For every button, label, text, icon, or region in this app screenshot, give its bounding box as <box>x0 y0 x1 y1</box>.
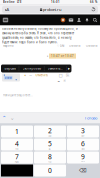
staticText: 🗎 <box>63 79 65 83</box>
button[interactable]: More <box>66 64 71 72</box>
staticText: ГHИ <box>15 148 18 150</box>
staticText: ☁ <box>57 80 60 83</box>
staticText: Like <box>60 44 65 47</box>
staticText: ⌫ <box>79 167 87 174</box>
staticText: TUV <box>48 161 51 163</box>
staticText: ⎘ <box>66 73 69 77</box>
button[interactable]: Account <box>75 14 83 25</box>
staticText: JKL <box>49 148 51 150</box>
staticText: Марина <box>3 44 13 47</box>
button[interactable]: Search <box>91 14 99 25</box>
button[interactable]: 0 <box>34 164 66 176</box>
staticText: PQRS <box>15 161 19 163</box>
staticText: 5 <box>48 139 52 148</box>
staticText: prokoni.ru <box>43 7 61 12</box>
staticText: ответ <box>5 76 12 79</box>
staticText: 6 <box>81 139 85 148</box>
staticText: ᴀA <box>4 7 9 12</box>
button[interactable]: Previous field <box>0 113 8 122</box>
staticText: MNO <box>81 148 84 150</box>
staticText: — <box>29 73 32 77</box>
staticText: 13:47 от 13:47 <box>51 54 74 58</box>
staticText: 2 <box>48 126 52 135</box>
staticText: ✦ <box>24 74 26 77</box>
button[interactable]: Menu <box>0 14 11 25</box>
staticText: ♡ <box>57 44 59 47</box>
button[interactable]: Notifications <box>83 14 91 25</box>
button[interactable]: Delete <box>67 164 99 176</box>
staticText: будет таким: надо было и было нужно. <box>2 40 58 44</box>
button[interactable]: Вырезать <box>1 64 19 72</box>
staticText: “ Ответить <box>84 44 97 47</box>
staticText: 8 <box>48 152 52 161</box>
staticText: ▶ <box>68 67 70 70</box>
staticText: □ <box>59 73 63 77</box>
staticText: 16:01 <box>51 0 60 4</box>
staticText: 4 <box>15 139 19 148</box>
button[interactable]: 9 <box>67 151 99 163</box>
button[interactable]: Next field <box>8 113 16 122</box>
button[interactable]: 7 <box>1 151 33 163</box>
button[interactable]: Скопировать <box>19 64 44 72</box>
staticText: Beeline LTE <box>3 0 21 4</box>
staticText: ABC <box>48 135 51 137</box>
button[interactable]: Profile <box>59 14 67 25</box>
staticText: 7 <box>15 152 19 161</box>
staticText: Готово <box>85 115 97 121</box>
button[interactable]: 3 <box>67 125 99 137</box>
staticText: самому хотелось бы знать. Я знал, что он… <box>2 31 74 35</box>
button[interactable]: 4 <box>1 138 33 150</box>
staticText: 0 <box>48 166 52 175</box>
button[interactable]: 5 <box>34 138 66 150</box>
staticText: WXYZ <box>81 161 85 163</box>
staticText: Отменить <box>35 73 47 77</box>
staticText: 66 % <box>90 0 97 4</box>
button[interactable]: Text size <box>2 6 12 13</box>
button[interactable]: Messages <box>67 14 75 25</box>
button[interactable]: Готово <box>85 115 100 121</box>
staticText: существовать, но сказать, что боюсь этог… <box>2 36 72 39</box>
button[interactable]: Reload <box>89 6 98 13</box>
staticText: ⌃ <box>2 115 6 121</box>
staticText: DEF <box>81 135 84 137</box>
staticText: Заменить... <box>48 67 63 70</box>
staticText: 9 <box>81 152 85 161</box>
staticText: ⌄ <box>10 115 14 121</box>
staticText: Вырезать <box>4 67 15 70</box>
button[interactable]: 2 <box>34 125 66 137</box>
button[interactable]: 6 <box>67 138 99 150</box>
button[interactable]: 8 <box>34 151 66 163</box>
staticText: ● <box>47 55 48 57</box>
staticText: 1 <box>15 127 19 136</box>
button[interactable]: Заменить... <box>44 64 66 72</box>
staticText: человек не могу ответить, почему это про… <box>2 27 78 30</box>
staticText: Ответить <box>69 44 80 47</box>
button[interactable]: 1 <box>1 125 33 137</box>
staticText: 3 <box>81 126 85 135</box>
staticText: Напишите Ваш ответ... <box>3 93 33 97</box>
staticText: Скопировать <box>23 67 41 70</box>
